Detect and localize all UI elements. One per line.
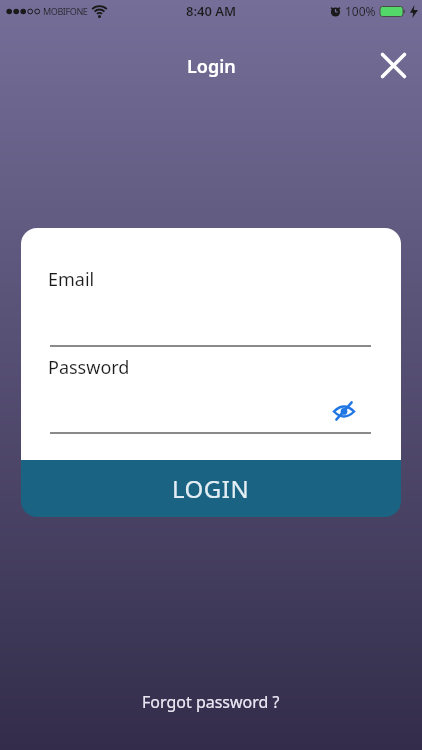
staticText: Email [48,267,95,292]
staticText: Password [48,355,130,380]
button[interactable] [326,393,362,429]
staticText: MOBIFONE [43,5,88,17]
button[interactable] [377,49,409,81]
staticText: 8:40 AM [186,2,237,20]
button[interactable]: LOGIN [21,460,401,517]
staticText: LOGIN [172,472,250,505]
staticText: Login [187,54,236,79]
button[interactable]: Forgot password ? [142,691,280,713]
staticText: 100% [345,3,376,19]
